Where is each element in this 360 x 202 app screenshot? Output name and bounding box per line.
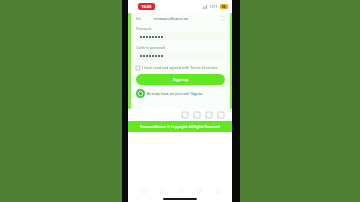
- staticText: I have read and agreed with Terms of ser…: [142, 65, 218, 70]
- staticText: emmacodfusion.vn: [154, 16, 189, 21]
- staticText: Sign up: [173, 77, 189, 83]
- button[interactable]: Back: [182, 112, 188, 118]
- staticText: 84: [222, 5, 226, 9]
- button[interactable]: Sign up: [136, 74, 225, 85]
- staticText: Already have an account?: [147, 91, 191, 96]
- staticText: Sign in: [191, 91, 203, 96]
- other: Chat support: [136, 89, 145, 98]
- staticText: UT1: [210, 4, 218, 9]
- button[interactable]: Home: [158, 187, 165, 194]
- button[interactable]: More: [214, 187, 221, 194]
- button[interactable]: Recents: [177, 187, 184, 194]
- staticText: 19:20: [141, 4, 152, 9]
- button[interactable]: Menu: [218, 112, 224, 118]
- button[interactable]: [136, 32, 225, 41]
- button[interactable]: Tabs: [194, 112, 200, 118]
- button[interactable]: Back: [140, 187, 147, 194]
- staticText: Emmacodfusion © Copyright. All Rights Re…: [140, 124, 220, 129]
- staticText: Confirm password: [136, 45, 166, 50]
- staticText: Password: [136, 26, 152, 31]
- button[interactable]: I have read and agreed with Terms of ser…: [136, 65, 225, 70]
- button[interactable]: Info: [195, 187, 202, 194]
- button[interactable]: Chat support: [136, 89, 225, 98]
- button[interactable]: Bookmark: [206, 112, 212, 118]
- button[interactable]: Em: [136, 14, 225, 23]
- staticText: Em: [136, 16, 142, 21]
- button[interactable]: [136, 51, 225, 60]
